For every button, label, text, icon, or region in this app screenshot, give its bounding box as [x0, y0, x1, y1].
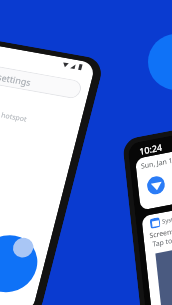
staticText: 10:24 — [133, 131, 169, 167]
staticText: Tap to view — [147, 218, 172, 265]
button[interactable]: Hotspot — [138, 167, 172, 203]
staticText: System UI — [158, 201, 172, 237]
button[interactable]: Sun, Jan 11 — [112, 101, 172, 250]
button[interactable]: Search settings — [0, 26, 90, 138]
staticText: Network & internet hotspot — [0, 81, 32, 148]
button[interactable]: System UI — [93, 159, 172, 305]
staticText: Sun, Jan 11 — [136, 140, 172, 187]
staticText: Screenshot captured — [145, 191, 172, 269]
staticText: Search settings — [0, 50, 37, 106]
